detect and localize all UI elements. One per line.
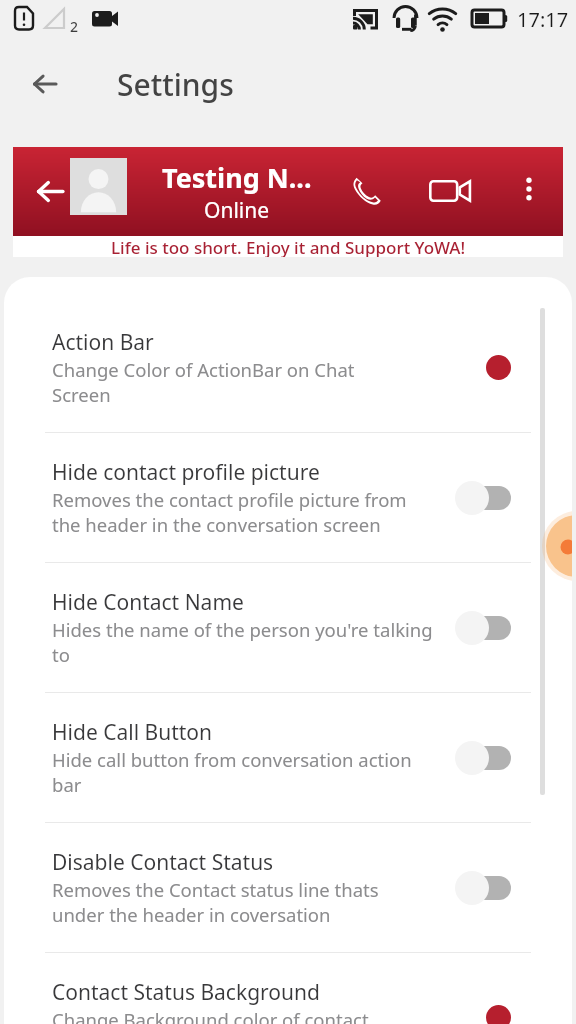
staticText: Change Background color of contact statu… <box>52 1007 369 1024</box>
button[interactable]: Hide Call Button <box>4 693 572 822</box>
staticText: Contact Status Background <box>52 978 320 1007</box>
button[interactable]: Back <box>25 166 75 216</box>
staticText: Hides the name of the person you're talk… <box>52 617 433 667</box>
staticText: Hide call button from conversation actio… <box>52 747 412 797</box>
staticText: Action Bar <box>52 328 154 357</box>
staticText: 2 <box>70 17 79 36</box>
staticText: Hide Contact Name <box>52 588 244 617</box>
staticText: Life is too short. Enjoy it and Support … <box>111 236 466 257</box>
button[interactable]: Action Bar <box>4 303 572 432</box>
button[interactable]: Contact Status Background <box>4 953 572 1024</box>
staticText: 17:17 <box>517 6 569 33</box>
button[interactable]: Video call <box>425 165 477 217</box>
button[interactable]: Pick colour <box>486 355 511 380</box>
button[interactable]: Disable Contact Status <box>4 823 572 952</box>
button[interactable]: Hide contact profile picture <box>4 433 572 562</box>
staticText: Disable Contact Status <box>52 848 274 877</box>
staticText: Settings <box>117 64 234 105</box>
staticText: Change Color of ActionBar on Chat Screen <box>52 357 355 407</box>
button[interactable]: Call <box>340 165 392 217</box>
button[interactable]: More options <box>505 165 553 213</box>
staticText: Hide contact profile picture <box>52 458 320 487</box>
button[interactable]: Back <box>21 60 69 108</box>
staticText: Testing N... <box>162 159 312 196</box>
staticText: Removes the Contact status line thats un… <box>52 877 379 927</box>
button[interactable]: Toggle <box>455 870 511 906</box>
button[interactable]: Toggle <box>455 740 511 776</box>
staticText: Online <box>204 196 270 225</box>
button[interactable]: Toggle <box>455 610 511 646</box>
staticText: Hide Call Button <box>52 718 213 747</box>
button[interactable]: Pick colour <box>486 1005 511 1024</box>
button[interactable]: Toggle <box>455 480 511 516</box>
staticText: Removes the contact profile picture from… <box>52 487 407 537</box>
button[interactable]: Hide Contact Name <box>4 563 572 692</box>
